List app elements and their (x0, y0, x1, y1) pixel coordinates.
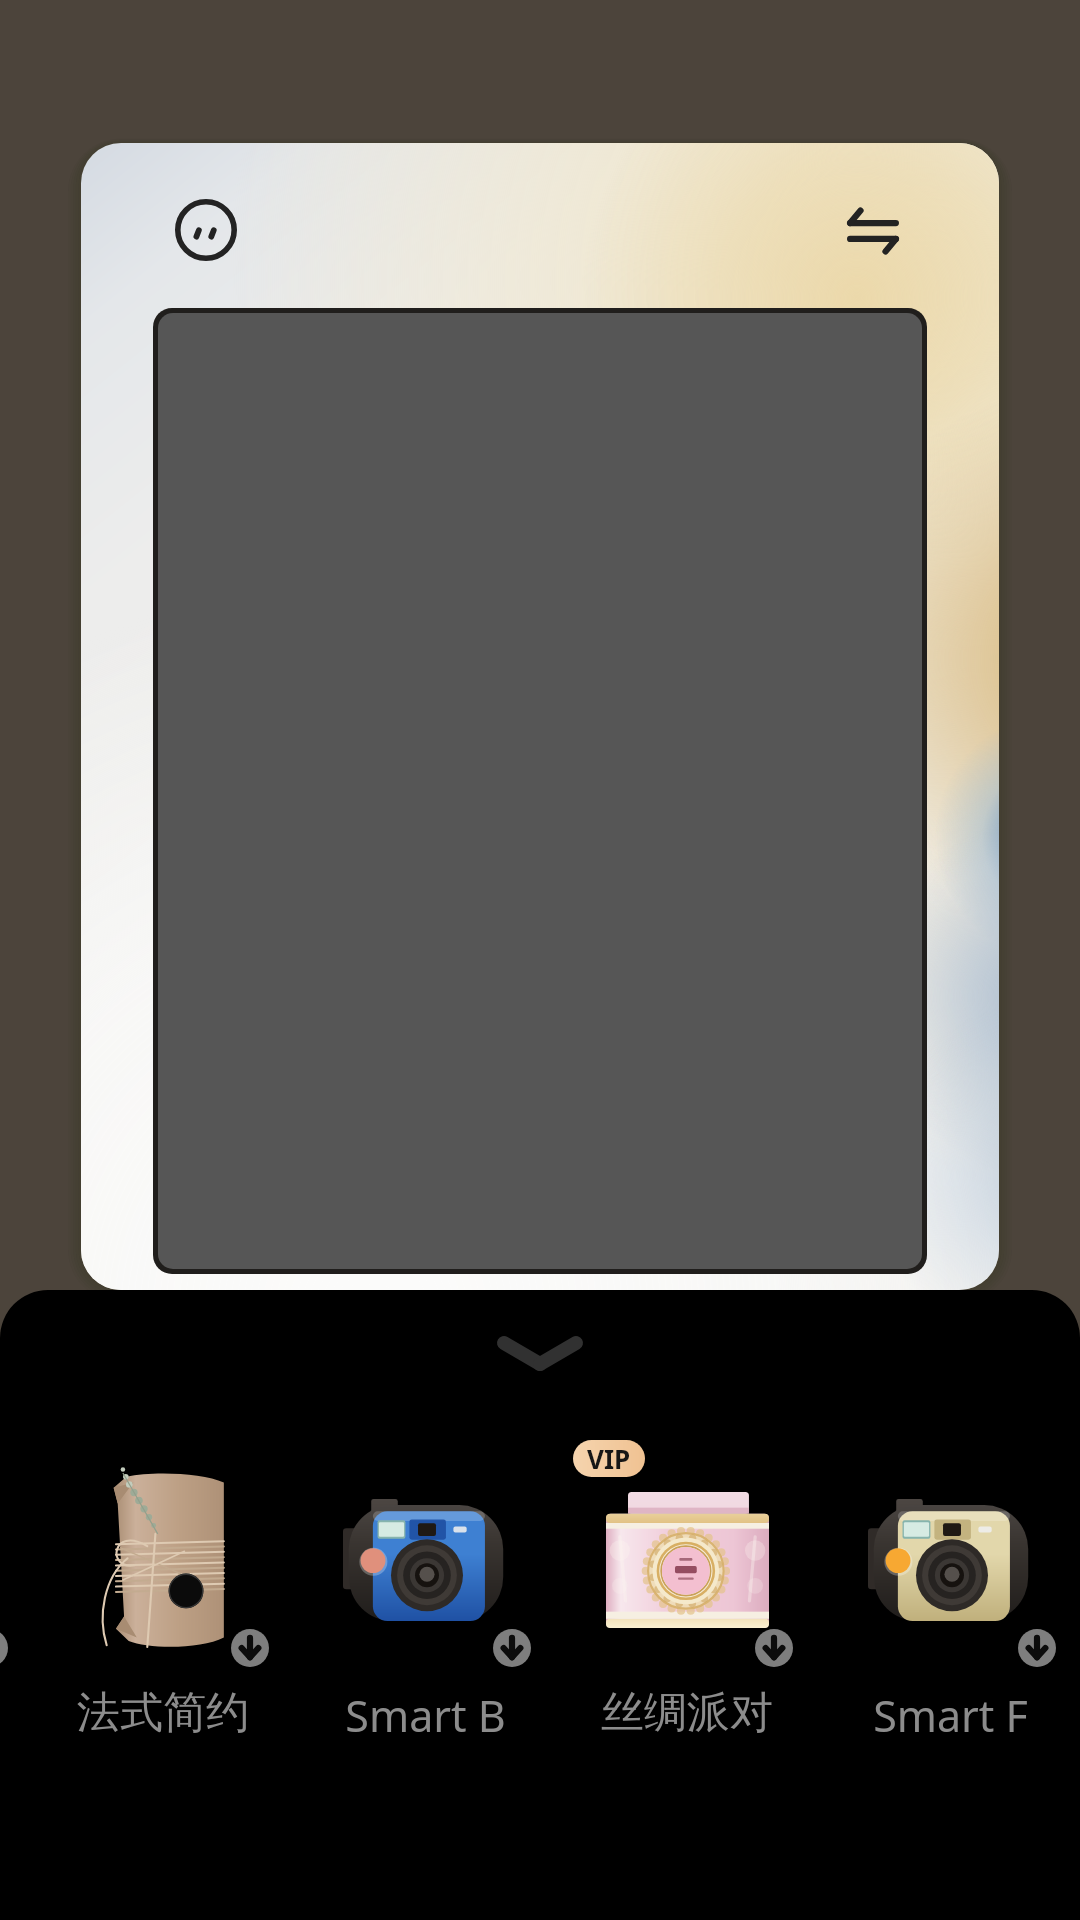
staticText: 法式简约 (77, 1686, 249, 1740)
staticText: VIP (587, 1441, 631, 1476)
button[interactable]: Switch camera (829, 187, 917, 275)
button[interactable]: Download (43, 1440, 283, 1750)
staticText: Smart F (873, 1686, 1028, 1745)
button[interactable]: Download (493, 1629, 531, 1667)
button[interactable]: Collapse panel (490, 1326, 590, 1380)
button[interactable]: Download (830, 1440, 1070, 1750)
button[interactable]: Download (1018, 1629, 1056, 1667)
button[interactable]: VIP (567, 1440, 807, 1750)
staticText: Smart B (345, 1686, 506, 1745)
button[interactable]: Download (231, 1629, 269, 1667)
staticText: 丝绸派对 (601, 1686, 773, 1740)
button[interactable]: Download (305, 1440, 545, 1750)
button[interactable]: Download (755, 1629, 793, 1667)
button[interactable]: Lens effect (162, 186, 250, 274)
